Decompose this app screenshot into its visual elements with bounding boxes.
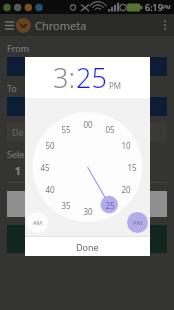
- staticText: 00: [83, 119, 93, 129]
- staticText: Chrometa: [35, 18, 87, 33]
- staticText: De: [12, 126, 24, 138]
- staticText: 25: [76, 59, 107, 96]
- button[interactable]: AM: [27, 212, 48, 233]
- staticText: 50: [45, 140, 55, 150]
- staticText: 40: [45, 184, 55, 194]
- button[interactable]: Save: [7, 225, 167, 253]
- staticText: 35: [61, 200, 71, 210]
- staticText: 20: [121, 184, 131, 194]
- button[interactable]: Done: [25, 237, 150, 256]
- staticText: 15: [127, 162, 137, 172]
- staticText: AM: [33, 219, 43, 227]
- staticText: 30: [83, 206, 93, 216]
- button[interactable]: [7, 191, 167, 217]
- button[interactable]: More options: [158, 15, 171, 35]
- staticText: 6:19: [145, 1, 163, 13]
- staticText: 1: [15, 164, 21, 178]
- staticText: To: [7, 82, 17, 94]
- staticText: Done: [76, 241, 99, 253]
- button[interactable]: [7, 97, 167, 116]
- staticText: 55: [61, 124, 71, 134]
- staticText: Select: [7, 148, 32, 160]
- staticText: PM: [163, 4, 171, 11]
- staticText: 25: [105, 200, 115, 210]
- staticText: 45: [40, 162, 50, 172]
- staticText: PM: [109, 80, 122, 91]
- staticText: From: [7, 42, 30, 54]
- staticText: PM: [133, 219, 143, 227]
- button[interactable]: De: [7, 122, 167, 142]
- staticText: 05: [105, 124, 115, 134]
- button[interactable]: Open navigation drawer: [3, 15, 16, 35]
- staticText: 3:: [53, 59, 76, 96]
- staticText: 10: [121, 140, 131, 150]
- staticText: Save: [73, 230, 102, 248]
- button[interactable]: [7, 57, 167, 76]
- button[interactable]: PM: [127, 212, 148, 233]
